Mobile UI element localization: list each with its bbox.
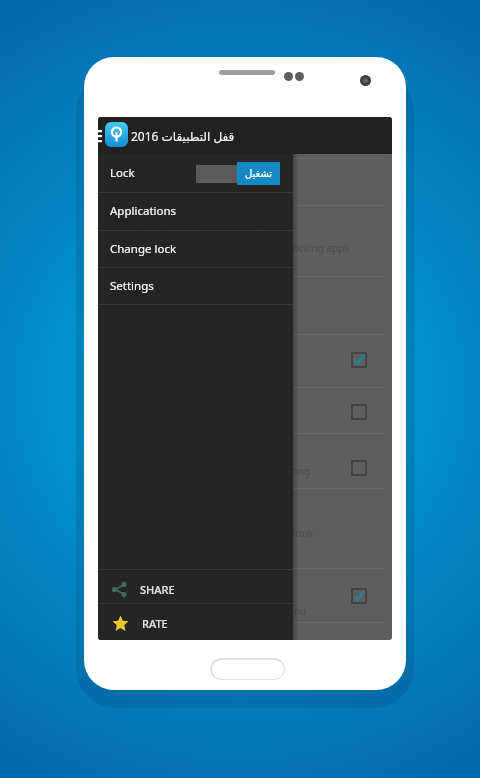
staticText: Automatically lock new apps before (109, 228, 276, 242)
staticText: Lock on boot (109, 580, 188, 598)
staticText: Set the number of dots in a pattern to d… (109, 526, 313, 540)
staticText: SHARE (140, 582, 175, 597)
staticText: Lock new apps (109, 211, 199, 229)
staticText: Hide lines on pattern when drawing wrong (109, 464, 310, 478)
button[interactable]: RATE (98, 604, 293, 640)
staticText: Pattern (109, 180, 144, 194)
staticText: Security (109, 287, 158, 305)
button[interactable]: Applications (98, 192, 293, 230)
button[interactable]: Settings (98, 267, 293, 305)
staticText: Lock (110, 165, 135, 181)
button[interactable]: Change lock (98, 230, 293, 268)
staticText: قفل التطبيقات 2016 (131, 128, 235, 144)
staticText: Settings (110, 278, 154, 294)
staticText: تشغيل (245, 168, 273, 180)
staticText: Change lock (110, 241, 177, 257)
button[interactable]: SHARE (98, 570, 293, 608)
staticText: Lock Type (109, 164, 170, 182)
staticText: Applications (110, 203, 177, 219)
staticText: Enable lock when the device starts for y… (109, 604, 307, 618)
button[interactable]: Lock (98, 154, 293, 192)
staticText: Automatically lock new apps before unloc… (109, 241, 350, 255)
button[interactable]: Open navigation drawer (98, 126, 112, 146)
staticText: RATE (142, 616, 168, 631)
